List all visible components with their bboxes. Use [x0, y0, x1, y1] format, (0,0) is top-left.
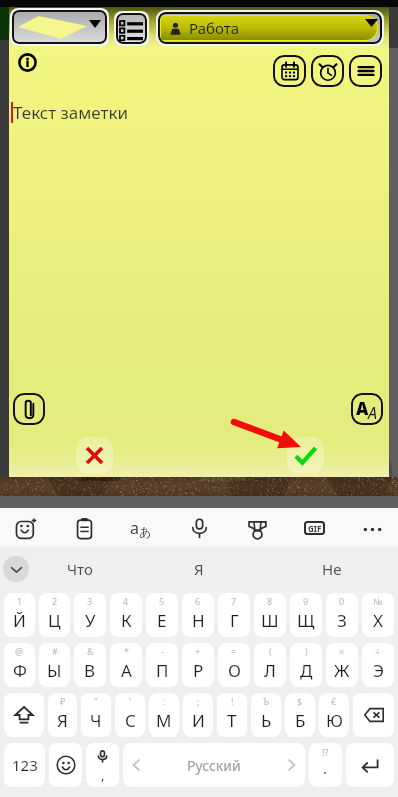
button[interactable]: @: [4, 643, 35, 687]
staticText: Ю: [326, 709, 343, 732]
button[interactable]: Emoji: [49, 743, 82, 787]
staticText: Я: [57, 709, 68, 732]
staticText: К: [121, 609, 132, 632]
staticText: Ж: [334, 659, 350, 682]
button[interactable]: ×: [326, 643, 358, 687]
staticText: Ъ: [263, 695, 270, 707]
staticText: Н: [192, 609, 205, 632]
staticText: В: [84, 659, 96, 682]
button[interactable]: Ъ: [251, 693, 281, 737]
staticText: 4: [123, 595, 129, 607]
button[interactable]: Calendar: [273, 55, 306, 87]
staticText: ): [305, 645, 308, 657]
button[interactable]: Stickers: [7, 509, 45, 547]
button[interactable]: !?: [309, 743, 342, 787]
button[interactable]: (: [254, 643, 286, 687]
button[interactable]: +: [182, 643, 214, 687]
staticText: Русский: [187, 756, 241, 775]
button[interactable]: ): [290, 643, 322, 687]
staticText: Т: [227, 709, 237, 732]
staticText: З: [337, 609, 347, 632]
staticText: Ч: [90, 709, 102, 732]
button[interactable]: №: [362, 593, 394, 637]
button[interactable]: Voice typing: [180, 509, 218, 547]
staticText: あ: [139, 524, 152, 539]
button[interactable]: 7: [218, 593, 250, 637]
button[interactable]: Shift: [4, 693, 44, 737]
button[interactable]: More options: [353, 509, 391, 547]
button[interactable]: Cancel: [76, 437, 113, 474]
staticText: 8: [267, 595, 273, 607]
staticText: А: [121, 659, 132, 682]
staticText: :: [163, 695, 166, 707]
staticText: *: [124, 645, 129, 657]
button[interactable]: €: [319, 693, 349, 737]
button[interactable]: Alarm: [311, 55, 344, 87]
staticText: ': [129, 695, 132, 707]
button[interactable]: Я: [132, 547, 265, 590]
button[interactable]: :: [149, 693, 179, 737]
staticText: Ц: [48, 609, 61, 632]
button[interactable]: &: [74, 643, 106, 687]
button[interactable]: =: [218, 643, 250, 687]
button[interactable]: -: [146, 643, 178, 687]
staticText: Ш: [261, 609, 279, 632]
button[interactable]: 4: [110, 593, 142, 637]
button[interactable]: 9: [290, 593, 322, 637]
button[interactable]: Работа: [158, 12, 382, 44]
button[interactable]: 8: [254, 593, 286, 637]
button[interactable]: 123: [4, 743, 45, 787]
staticText: (: [269, 645, 272, 657]
staticText: 123: [12, 755, 38, 775]
staticText: @: [15, 645, 24, 657]
staticText: Что: [67, 559, 93, 579]
button[interactable]: Rewards: [238, 509, 276, 547]
button[interactable]: Info: [12, 47, 42, 77]
button[interactable]: ': [115, 693, 145, 737]
button[interactable]: $: [285, 693, 315, 737]
button[interactable]: ₽: [48, 693, 77, 737]
button[interactable]: 2: [39, 593, 70, 637]
button[interactable]: Backspace: [353, 693, 394, 737]
staticText: Ы: [47, 659, 62, 682]
staticText: ;: [197, 695, 200, 707]
button[interactable]: Note type: [12, 10, 107, 44]
button[interactable]: Save note: [287, 437, 324, 474]
button[interactable]: Clipboard: [65, 509, 103, 547]
button[interactable]: ;: [183, 693, 213, 737]
button[interactable]: Attach file: [13, 393, 45, 425]
button[interactable]: #: [39, 643, 70, 687]
button[interactable]: 0: [326, 593, 358, 637]
staticText: Не: [322, 559, 342, 579]
button[interactable]: Что: [0, 547, 132, 590]
button[interactable]: Voice input: [86, 743, 119, 787]
staticText: 9: [303, 595, 309, 607]
button[interactable]: Translate: [122, 509, 160, 547]
button[interactable]: !: [217, 693, 247, 737]
staticText: $: [297, 695, 303, 707]
staticText: GIF: [308, 523, 322, 534]
button[interactable]: Enter: [346, 743, 394, 787]
button[interactable]: *: [110, 643, 142, 687]
button[interactable]: Menu: [349, 55, 382, 87]
button[interactable]: Русский: [123, 743, 305, 787]
staticText: Е: [157, 609, 167, 632]
staticText: 1: [17, 595, 23, 607]
button[interactable]: Не: [265, 547, 398, 590]
button[interactable]: ÷: [362, 643, 394, 687]
button[interactable]: Expand suggestions: [3, 556, 29, 582]
button[interactable]: 1: [4, 593, 35, 637]
button[interactable]: List view: [116, 13, 147, 44]
button[interactable]: Font: [351, 393, 383, 425]
button[interactable]: 6: [182, 593, 214, 637]
staticText: +: [195, 645, 201, 657]
staticText: .: [323, 758, 328, 778]
button[interactable]: ": [81, 693, 111, 737]
button[interactable]: GIF: [295, 509, 333, 547]
staticText: Я: [194, 559, 204, 579]
button[interactable]: 3: [74, 593, 106, 637]
staticText: М: [156, 709, 172, 732]
button[interactable]: 5: [146, 593, 178, 637]
staticText: Ф: [13, 659, 27, 682]
staticText: ×: [339, 645, 345, 657]
